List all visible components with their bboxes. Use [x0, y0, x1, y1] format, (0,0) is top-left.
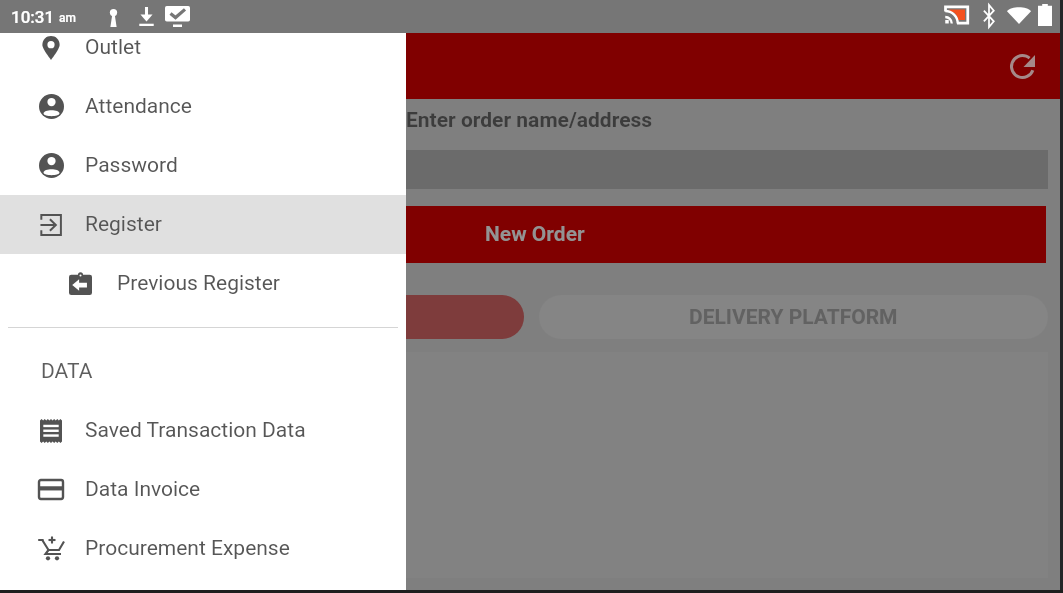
button[interactable]: Order name or address field: [12, 150, 1048, 189]
staticText: 10:31: [11, 7, 55, 27]
staticText: Data Invoice: [85, 477, 201, 502]
button[interactable]: Attendance: [0, 77, 406, 136]
staticText: Attendance: [85, 94, 192, 119]
button[interactable]: Password: [0, 136, 406, 195]
staticText: Saved Transaction Data: [85, 418, 306, 443]
staticText: Previous Register: [117, 271, 280, 296]
button[interactable]: Refresh: [1002, 46, 1042, 86]
staticText: DATA: [41, 359, 93, 384]
button[interactable]: Previous Register: [0, 254, 406, 313]
staticText: Register: [85, 212, 162, 237]
button[interactable]: Register: [0, 195, 406, 254]
staticText: Password: [85, 153, 178, 178]
button[interactable]: Saved Transaction Data: [0, 401, 406, 460]
button[interactable]: Outlet: [0, 18, 406, 77]
staticText: am: [59, 11, 76, 25]
button[interactable]: Dine in: [17, 295, 524, 339]
button[interactable]: New Order: [24, 206, 1046, 263]
staticText: DELIVERY PLATFORM: [689, 305, 898, 330]
staticText: Procurement Expense: [85, 536, 290, 561]
staticText: Outlet: [85, 35, 142, 60]
button[interactable]: Data Invoice: [0, 460, 406, 519]
button[interactable]: DELIVERY PLATFORM: [539, 295, 1048, 339]
button[interactable]: Procurement Expense: [0, 519, 406, 578]
staticText: Enter order name/address: [406, 108, 653, 133]
staticText: New Order: [485, 222, 585, 247]
